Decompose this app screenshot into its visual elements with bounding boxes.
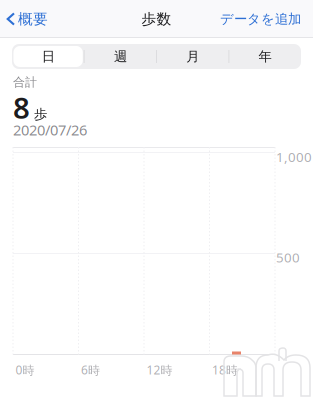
button[interactable]: 日 <box>12 44 84 69</box>
staticText: 合計 <box>13 75 37 90</box>
staticText: 8 <box>13 88 30 127</box>
staticText: 1,000 <box>276 148 312 166</box>
staticText: 500 <box>276 248 300 266</box>
staticText: 週 <box>114 48 127 65</box>
button[interactable]: 週 <box>84 44 156 69</box>
staticText: 12時 <box>146 362 172 378</box>
button[interactable]: 年 <box>229 44 301 69</box>
button[interactable]: 概要 <box>0 4 48 34</box>
staticText: 18時 <box>212 362 238 378</box>
staticText: 概要 <box>18 10 48 28</box>
staticText: 年 <box>258 48 271 65</box>
staticText: 6時 <box>81 362 100 378</box>
staticText: 歩 <box>34 106 47 123</box>
staticText: 日 <box>42 48 55 65</box>
staticText: 月 <box>186 48 199 65</box>
staticText: データを追加 <box>220 11 301 27</box>
button[interactable]: データを追加 <box>220 5 313 33</box>
staticText: 0時 <box>15 362 34 378</box>
staticText: 2020/07/26 <box>13 120 87 139</box>
staticText: 歩数 <box>141 10 171 28</box>
button[interactable]: 月 <box>156 44 229 69</box>
